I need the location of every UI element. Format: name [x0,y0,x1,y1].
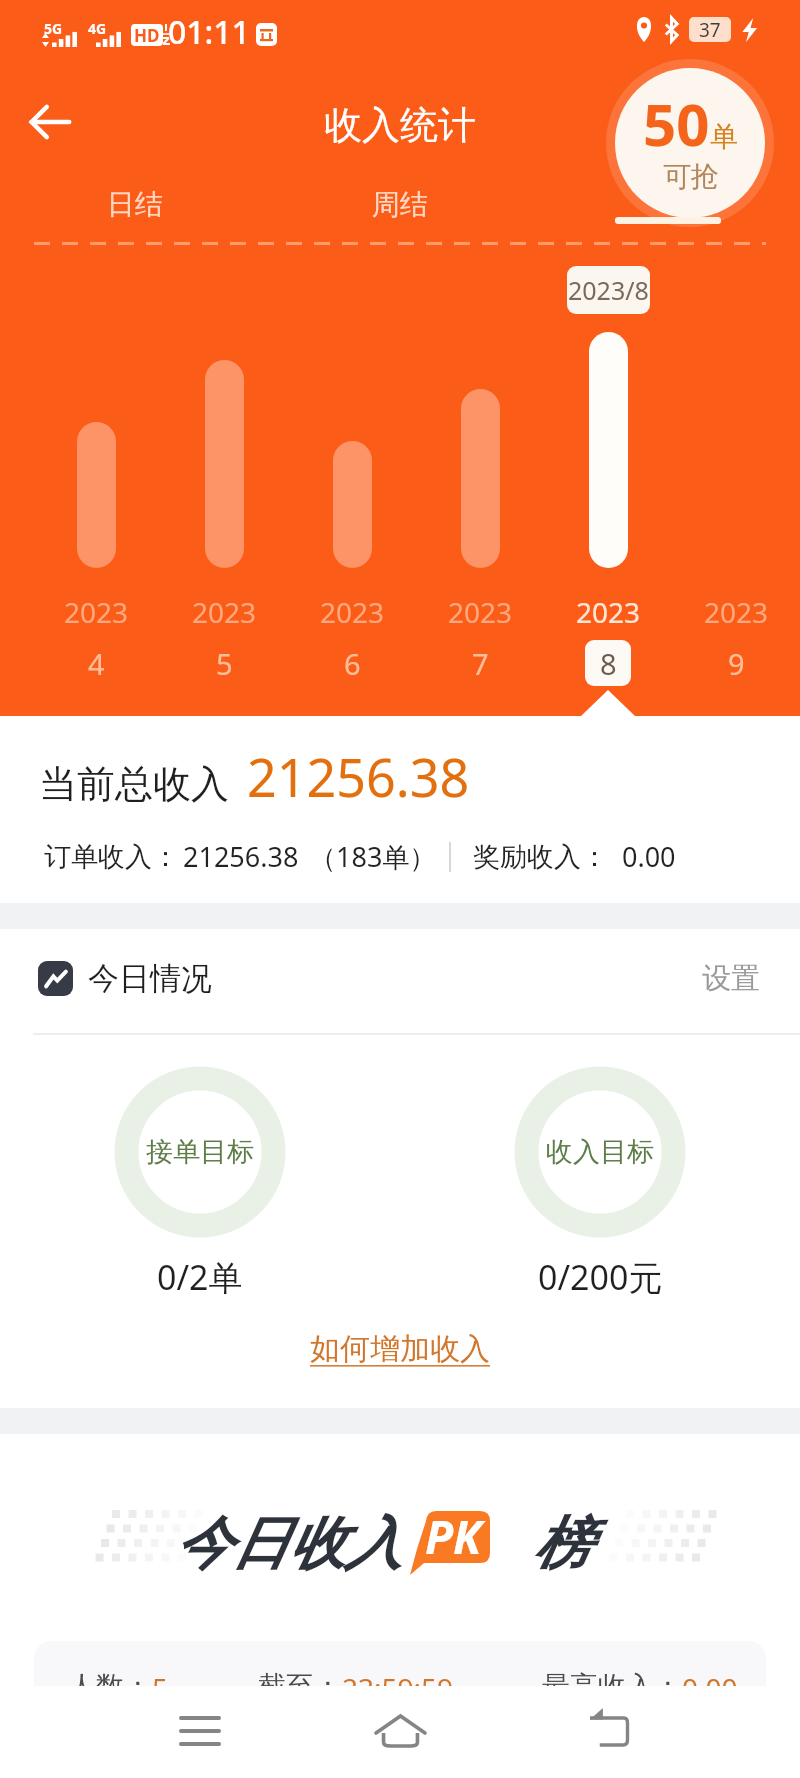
staticText: 2023/8 [568,273,649,307]
button[interactable]: 如何增加收入 [304,1326,496,1372]
staticText: 50 [643,84,710,163]
button[interactable]: 周结 [335,176,465,232]
staticText: HD [134,24,160,46]
staticText: 9 [728,644,745,683]
button[interactable]: Back [564,1686,654,1776]
staticText: 接单目标 [146,1135,254,1169]
staticText: 5 [152,1669,169,1707]
button[interactable]: Home [355,1686,445,1776]
staticText: 6 [344,644,361,683]
staticText: 01:11 [168,10,250,54]
button[interactable]: Back [14,86,86,158]
staticText: 0/2单 [157,1254,243,1300]
staticText: 2023 [576,593,641,631]
staticText: PK [425,1505,482,1568]
staticText: 2023 [448,593,513,631]
staticText: 0.00 [682,1669,738,1707]
staticText: 7 [472,644,489,683]
staticText: 订单收入： [44,840,179,874]
staticText: 单 [710,119,738,154]
staticText: 如何增加收入 [310,1330,490,1368]
staticText: 0.00 [622,838,676,875]
button[interactable]: 50 orders available [605,58,775,228]
staticText: 设置 [702,960,760,997]
staticText: 2023 [704,593,769,631]
staticText: 收入统计 [0,101,800,149]
staticText: 37 [699,17,721,42]
staticText: 榜 [533,1508,590,1580]
staticText: 截至： [258,1669,342,1704]
staticText: 人数： [68,1669,152,1704]
staticText: 最高收入： [542,1669,682,1704]
staticText: 可抢 [663,159,719,194]
staticText: 4G [88,19,107,38]
staticText: 23:59:59 [342,1669,454,1707]
staticText: 2023 [64,593,129,631]
staticText: 奖励收入： [473,840,608,874]
button[interactable]: 设置 [698,950,764,1007]
button[interactable]: 人数： [34,1641,766,1778]
staticText: 收入目标 [546,1135,654,1169]
button[interactable]: 日结 [70,176,200,232]
staticText: 2023 [320,593,385,631]
staticText: 21256.38 [247,741,470,812]
staticText: 日结 [107,187,163,222]
staticText: 今日情况 [88,959,212,998]
staticText: 4 [88,644,105,683]
staticText: 周结 [372,187,428,222]
staticText: （183单） [309,838,437,875]
staticText: 当前总收入 [39,760,229,808]
staticText: 2023 [192,593,257,631]
staticText: 今日收入 [174,1508,402,1580]
button[interactable]: Recents [155,1686,245,1776]
staticText: 5G [44,19,63,38]
staticText: 8 [600,644,617,683]
staticText: 5 [216,644,233,683]
staticText: 21256.38 [183,838,299,875]
staticText: 0/200元 [538,1254,663,1300]
